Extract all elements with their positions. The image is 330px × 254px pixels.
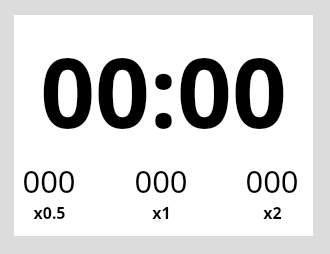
staticText: 000: [22, 160, 76, 202]
button[interactable]: 000: [245, 160, 299, 224]
staticText: x0.5: [33, 202, 66, 224]
staticText: 00:00: [40, 25, 287, 156]
staticText: x1: [152, 202, 171, 224]
button[interactable]: 000: [134, 160, 188, 224]
button[interactable]: 00:00: [14, 25, 313, 156]
staticText: 000: [134, 160, 188, 202]
staticText: 000: [245, 160, 299, 202]
staticText: x2: [263, 202, 282, 224]
button[interactable]: 000: [22, 160, 76, 224]
